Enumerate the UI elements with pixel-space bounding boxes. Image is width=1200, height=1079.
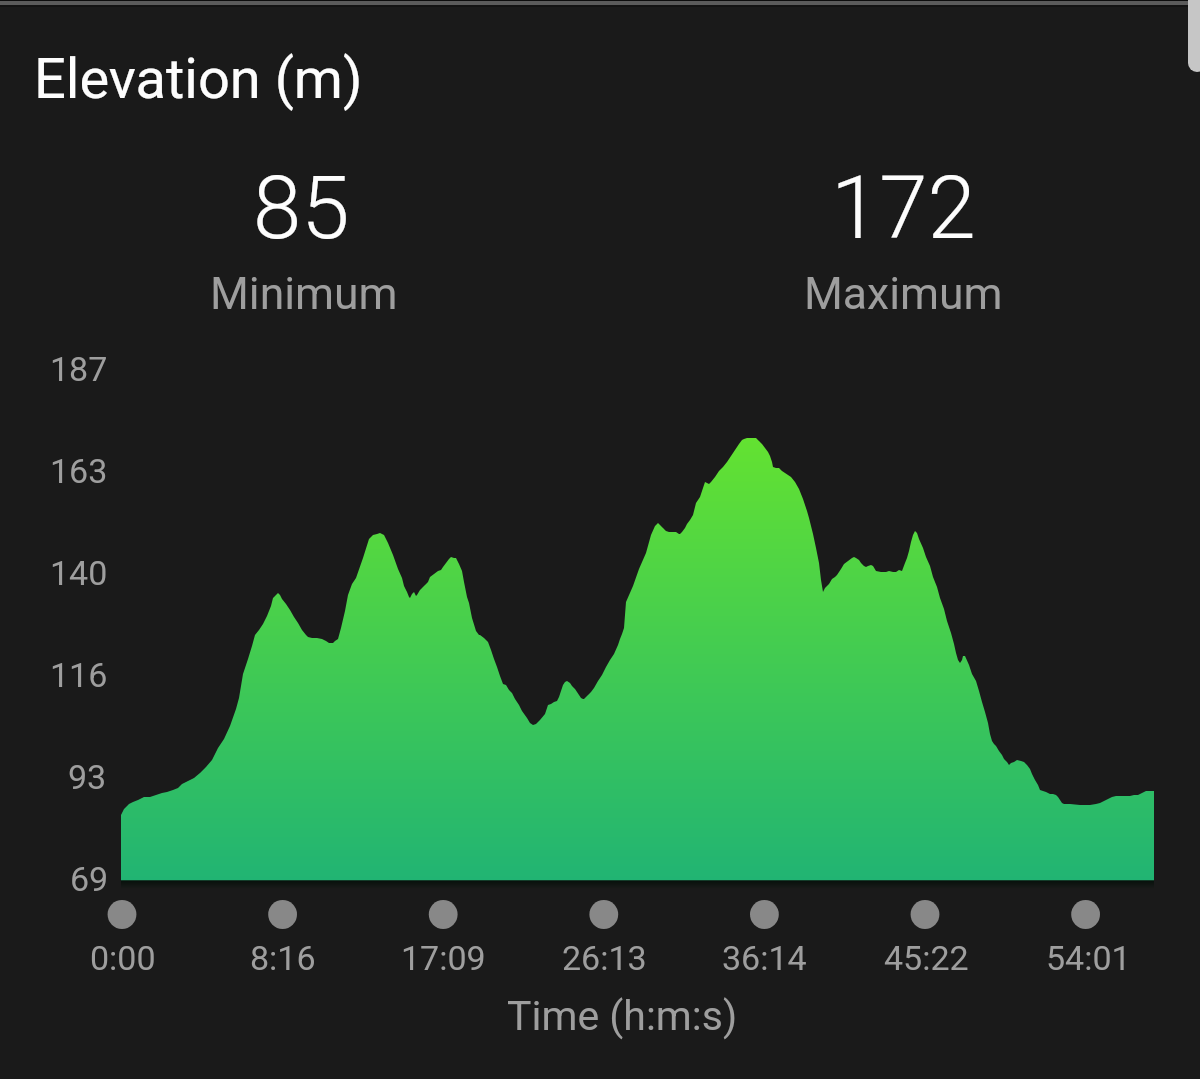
- staticText: 69: [70, 859, 109, 899]
- staticText: 17:09: [401, 938, 486, 978]
- staticText: Elevation (m): [34, 46, 363, 112]
- staticText: Minimum: [210, 268, 398, 320]
- button[interactable]: 85: [0, 150, 600, 325]
- staticText: 85: [253, 157, 350, 259]
- staticText: Maximum: [804, 268, 1003, 320]
- staticText: 0:00: [90, 938, 156, 978]
- staticText: 45:22: [884, 938, 969, 978]
- button[interactable]: Elevation chart: [0, 0, 1200, 1079]
- button[interactable]: 172: [600, 150, 1200, 325]
- staticText: 93: [68, 757, 107, 797]
- other: Scroll position: [1188, 0, 1200, 72]
- staticText: 140: [50, 553, 108, 593]
- staticText: 54:01: [1046, 938, 1131, 978]
- staticText: 163: [50, 451, 108, 491]
- staticText: Time (h:m:s): [507, 992, 738, 1040]
- staticText: 26:13: [562, 938, 647, 978]
- staticText: 172: [831, 157, 976, 259]
- staticText: 187: [50, 349, 108, 389]
- staticText: 36:14: [722, 938, 807, 978]
- staticText: 116: [50, 655, 108, 695]
- staticText: 8:16: [250, 938, 316, 978]
